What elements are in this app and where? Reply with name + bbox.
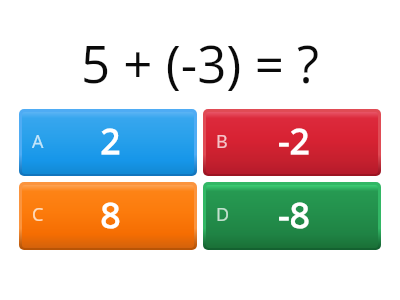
button[interactable]: A bbox=[19, 109, 197, 176]
staticText: B bbox=[216, 129, 228, 154]
staticText: 8 bbox=[100, 191, 121, 239]
staticText: D bbox=[216, 202, 230, 227]
button[interactable]: B bbox=[203, 109, 381, 176]
staticText: 5 + (-3) = ? bbox=[0, 28, 400, 97]
staticText: C bbox=[32, 202, 44, 227]
staticText: -2 bbox=[278, 117, 310, 165]
staticText: 2 bbox=[100, 117, 121, 165]
staticText: A bbox=[32, 129, 44, 154]
button[interactable]: C bbox=[19, 182, 197, 250]
staticText: -8 bbox=[278, 191, 310, 239]
button[interactable]: D bbox=[203, 182, 381, 250]
